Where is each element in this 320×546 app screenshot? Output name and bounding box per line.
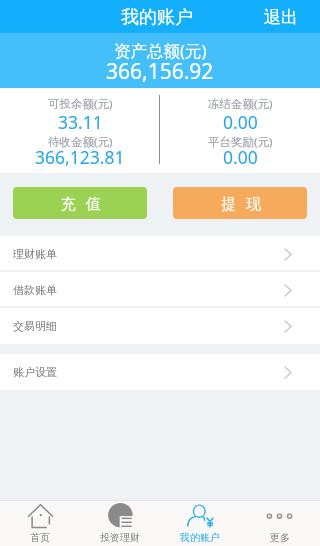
staticText: 冻结金额(元)	[208, 96, 273, 112]
staticText: 366,123.81	[35, 145, 125, 169]
staticText: 可投余额(元)	[48, 96, 113, 112]
staticText: 退出	[264, 7, 298, 28]
button[interactable]: 我的账户	[160, 500, 240, 546]
staticText: 我的账户	[180, 531, 220, 544]
button[interactable]: 投资理财	[80, 500, 160, 546]
button[interactable]: 账户设置	[0, 354, 320, 390]
staticText: 投资理财	[100, 531, 140, 544]
button[interactable]: 交易明细	[0, 308, 320, 344]
staticText: 待收金额(元)	[48, 134, 113, 150]
staticText: 平台奖励(元)	[208, 134, 273, 150]
staticText: 理财账单	[13, 247, 57, 261]
button[interactable]: 退出	[254, 2, 320, 31]
staticText: 我的账户	[121, 6, 193, 29]
staticText: 提 现	[221, 193, 264, 213]
staticText: 首页	[30, 531, 50, 544]
button[interactable]: 首页	[0, 500, 80, 546]
staticText: 33.11	[58, 110, 103, 134]
staticText: 0.00	[223, 110, 258, 134]
staticText: 0.00	[223, 145, 258, 169]
staticText: 账户设置	[13, 365, 57, 379]
button[interactable]: 更多	[240, 500, 320, 546]
button[interactable]: 理财账单	[0, 236, 320, 272]
button[interactable]: 借款账单	[0, 272, 320, 308]
staticText: 366,156.92	[106, 57, 214, 86]
staticText: 充 值	[61, 193, 104, 213]
staticText: 更多	[270, 531, 290, 544]
button[interactable]: 充 值	[13, 187, 147, 219]
staticText: 借款账单	[13, 283, 57, 297]
button[interactable]: 提 现	[173, 187, 307, 219]
staticText: 资产总额(元)	[114, 39, 207, 62]
staticText: 交易明细	[13, 319, 57, 333]
